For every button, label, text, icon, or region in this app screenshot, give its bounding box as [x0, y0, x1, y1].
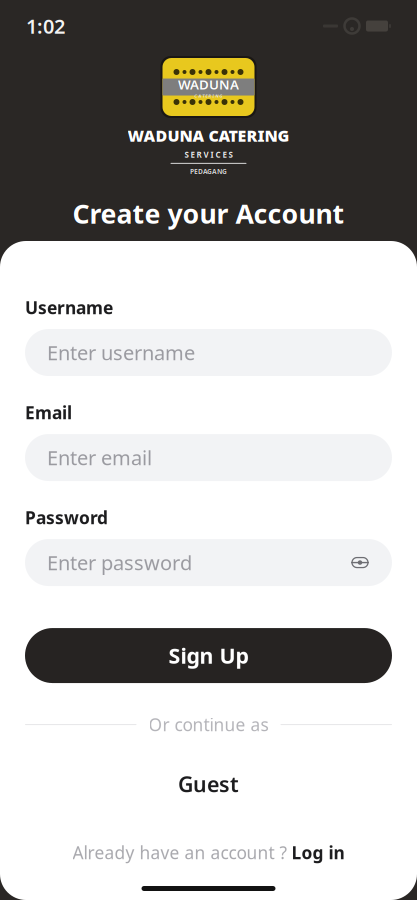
- button[interactable]: Enter username: [25, 329, 392, 376]
- staticText: S E R V I C E S: [184, 149, 232, 160]
- staticText: WADUNA CATERING: [127, 125, 289, 146]
- staticText: Password: [25, 506, 108, 529]
- button[interactable]: Already have an account ?: [60, 835, 356, 870]
- staticText: Create your Account: [72, 196, 344, 231]
- staticText: Enter password: [47, 549, 192, 576]
- button[interactable]: Enter password: [25, 539, 392, 586]
- staticText: WADUNA: [178, 75, 239, 93]
- staticText: Or continue as: [148, 713, 268, 736]
- staticText: 1:02: [26, 13, 65, 39]
- staticText: Email: [25, 401, 72, 424]
- staticText: Guest: [178, 770, 239, 798]
- staticText: Already have an account ?: [72, 841, 287, 864]
- staticText: Sign Up: [168, 641, 248, 670]
- staticText: Log in: [291, 841, 344, 864]
- button[interactable]: Enter email: [25, 434, 392, 481]
- staticText: C A T E R I N G: [194, 93, 222, 98]
- staticText: PEDAGANG: [190, 167, 227, 176]
- staticText: Enter username: [47, 339, 195, 366]
- button[interactable]: Guest: [25, 770, 392, 798]
- staticText: Enter email: [47, 444, 152, 471]
- button[interactable]: Sign Up: [25, 628, 392, 683]
- staticText: Username: [25, 296, 113, 319]
